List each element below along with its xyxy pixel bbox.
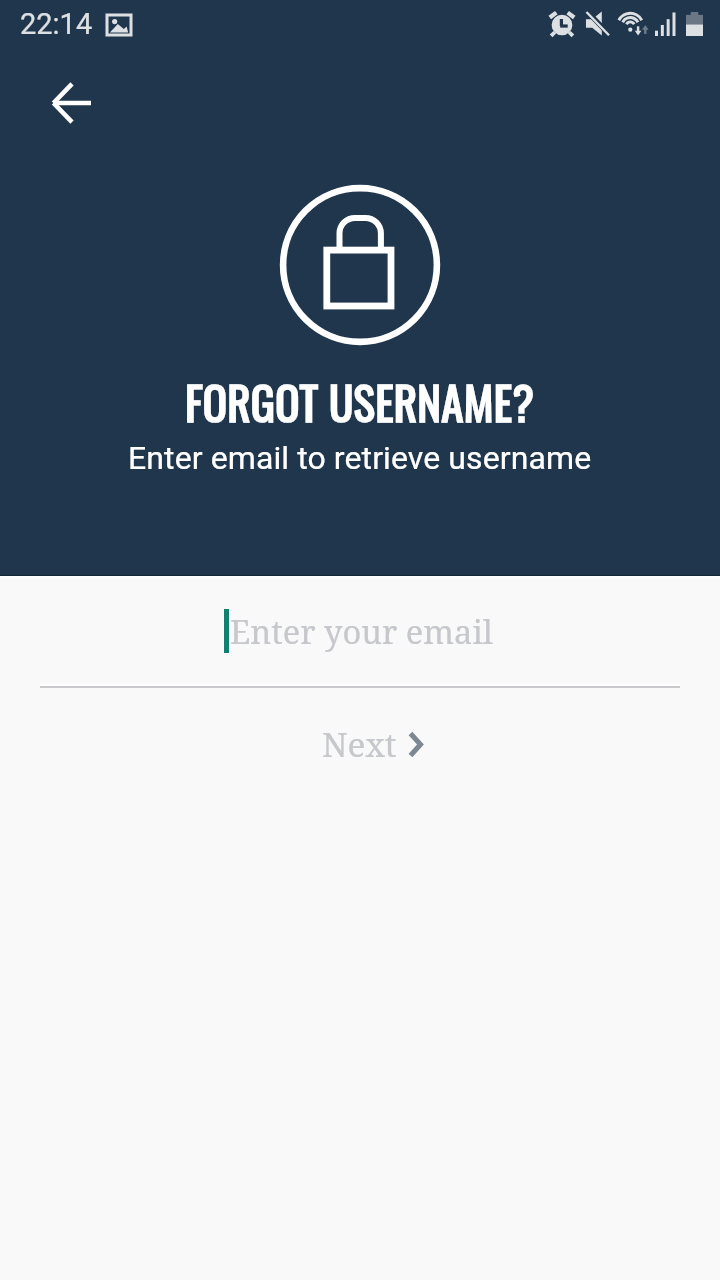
staticText: 22:14 bbox=[20, 7, 93, 41]
staticText: FORGOT USERNAME? bbox=[185, 368, 535, 435]
staticText: Enter your email bbox=[230, 609, 493, 653]
staticText: Enter email to retrieve username bbox=[128, 439, 592, 477]
staticText: Next bbox=[322, 721, 397, 767]
button[interactable]: Next bbox=[322, 721, 423, 767]
button[interactable]: Enter your email bbox=[40, 592, 680, 686]
button[interactable]: Back bbox=[48, 79, 96, 127]
